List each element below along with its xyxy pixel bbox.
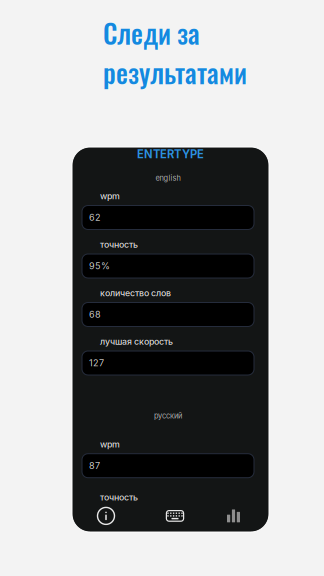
- button[interactable]: About: [72, 502, 140, 530]
- staticText: 68: [89, 309, 101, 320]
- staticText: количество слов: [100, 288, 171, 298]
- staticText: 62: [89, 212, 101, 223]
- staticText: 127: [89, 357, 104, 368]
- staticText: Следи за результатами: [103, 13, 247, 92]
- staticText: русский: [154, 411, 182, 420]
- staticText: ENTERTYPE: [137, 147, 204, 161]
- staticText: лучшая скорость: [100, 336, 173, 347]
- staticText: 87: [89, 460, 100, 471]
- button[interactable]: Typing test: [140, 502, 210, 530]
- staticText: english: [155, 174, 180, 183]
- button[interactable]: Statistics: [210, 502, 257, 530]
- staticText: точность: [100, 492, 138, 503]
- staticText: wpm: [100, 439, 120, 449]
- staticText: точность: [100, 239, 138, 250]
- staticText: wpm: [100, 191, 120, 201]
- staticText: 95%: [89, 260, 110, 271]
